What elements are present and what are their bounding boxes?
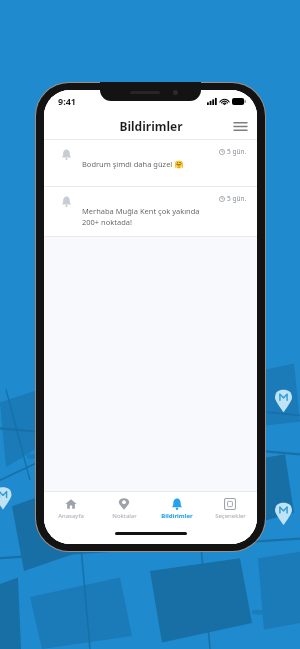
staticText: Bildirimler (161, 512, 193, 520)
staticText: Noktalar (112, 512, 137, 520)
button[interactable]: Noktalar (98, 492, 150, 526)
button[interactable]: 5 gün. (44, 187, 257, 237)
staticText: Seçenekler (215, 512, 246, 520)
button[interactable]: 5 gün. (44, 140, 257, 187)
button[interactable]: Menu (229, 115, 251, 137)
button[interactable]: Bildirimler (151, 492, 203, 526)
button[interactable]: Anasayfa (45, 492, 97, 526)
button[interactable]: Seçenekler (204, 492, 256, 526)
staticText: Bildirimler (119, 118, 183, 134)
staticText: 9:41 (58, 95, 76, 107)
staticText: Merhaba Muğla Kent çok yakında 200+ nokt… (82, 206, 200, 227)
staticText: Bodrum şimdi daha güzel 🤗 (82, 159, 184, 169)
staticText: Anasayfa (58, 512, 84, 520)
staticText: 5 gün. (227, 194, 247, 203)
staticText: 5 gün. (227, 147, 247, 156)
